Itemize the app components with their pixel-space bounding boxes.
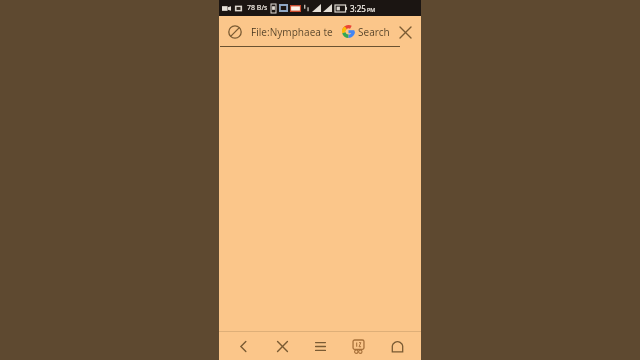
staticText: Search	[358, 25, 390, 39]
staticText: PM	[367, 6, 376, 13]
button[interactable]: Close	[393, 20, 417, 44]
button[interactable]: Search	[339, 16, 393, 47]
staticText: File:Nymphaea te	[251, 25, 333, 39]
staticText: 78 B/s	[247, 3, 268, 13]
button[interactable]: Home	[383, 332, 411, 360]
button[interactable]: Menu	[306, 332, 334, 360]
button[interactable]: Tabs	[344, 332, 372, 360]
button[interactable]: Stop	[268, 332, 296, 360]
button[interactable]: File:Nymphaea te	[246, 16, 339, 47]
button[interactable]: Back	[229, 332, 257, 360]
staticText: 3:25	[350, 3, 366, 14]
button[interactable]: Site information	[224, 21, 246, 43]
